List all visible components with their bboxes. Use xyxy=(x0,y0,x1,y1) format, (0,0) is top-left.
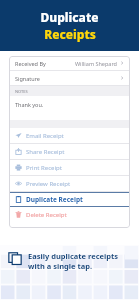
button[interactable]: Share Receipt xyxy=(9,144,130,159)
button[interactable]: Received By xyxy=(9,56,130,70)
staticText: NOTES xyxy=(15,89,28,94)
staticText: with a single tap. xyxy=(28,261,93,271)
staticText: Easily duplicate receipts xyxy=(28,251,119,261)
button[interactable]: Preview Receipt xyxy=(9,176,130,191)
staticText: Receipts xyxy=(44,26,96,42)
button[interactable]: Delete Receipt xyxy=(9,207,130,222)
staticText: Delete Receipt xyxy=(26,211,67,219)
staticText: Duplicate Receipt xyxy=(26,195,83,204)
staticText: Signature xyxy=(15,75,40,82)
staticText: Received By xyxy=(15,60,46,67)
button[interactable]: Signature xyxy=(9,71,130,85)
staticText: William Shepard xyxy=(75,60,117,67)
staticText: Thank you. xyxy=(15,101,44,108)
button[interactable]: Print Receipt xyxy=(9,160,130,175)
staticText: Print Receipt xyxy=(26,164,62,172)
staticText: Preview Receipt xyxy=(26,180,71,188)
button[interactable]: Duplicate Receipt xyxy=(9,192,130,207)
staticText: Duplicate xyxy=(40,9,99,25)
staticText: Email Receipt xyxy=(26,132,64,140)
button[interactable]: Email Receipt xyxy=(9,128,130,143)
staticText: Share Receipt xyxy=(26,148,65,156)
